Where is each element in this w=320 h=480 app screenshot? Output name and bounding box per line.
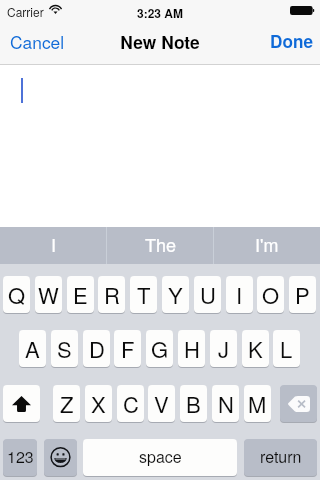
button[interactable]: Done	[268, 20, 315, 65]
staticText: L	[280, 333, 293, 365]
staticText: I	[51, 231, 57, 257]
button[interactable]: E	[67, 276, 94, 313]
button[interactable]: P	[289, 276, 316, 313]
button[interactable]: I'm	[213, 227, 320, 264]
button[interactable]: J	[210, 330, 237, 367]
button[interactable]: B	[180, 385, 207, 422]
staticText: E	[73, 279, 88, 311]
staticText: M	[248, 388, 267, 420]
staticText: O	[262, 279, 280, 311]
staticText: Q	[8, 279, 26, 311]
staticText: N	[218, 388, 234, 420]
button[interactable]: I	[0, 227, 107, 264]
staticText: 3:23 AM	[0, 4, 320, 21]
button[interactable]: The	[107, 227, 214, 264]
button[interactable]: N	[212, 385, 239, 422]
button[interactable]: Emoji	[44, 439, 77, 476]
button[interactable]: D	[83, 330, 110, 367]
staticText: Cancel	[10, 29, 65, 54]
staticText: P	[295, 279, 310, 311]
staticText: I	[236, 279, 243, 311]
staticText: The	[145, 231, 177, 257]
staticText: S	[57, 333, 72, 365]
button[interactable]: I	[226, 276, 253, 313]
button[interactable]: G	[146, 330, 173, 367]
button[interactable]: K	[242, 330, 269, 367]
button[interactable]: M	[244, 385, 271, 422]
button[interactable]: X	[85, 385, 112, 422]
button[interactable]: O	[257, 276, 284, 313]
staticText: A	[25, 333, 40, 365]
button[interactable]: Delete	[280, 385, 317, 422]
button[interactable]: T	[130, 276, 157, 313]
button[interactable]: return	[244, 439, 317, 476]
staticText: New Note	[0, 29, 320, 54]
staticText: space	[139, 445, 182, 468]
button[interactable]: F	[114, 330, 141, 367]
staticText: Z	[60, 388, 74, 420]
button[interactable]: space	[83, 439, 237, 476]
button[interactable]: L	[273, 330, 300, 367]
button[interactable]: U	[194, 276, 221, 313]
staticText: 123	[7, 445, 34, 468]
staticText: return	[260, 445, 302, 468]
staticText: J	[218, 333, 230, 365]
staticText: W	[38, 279, 59, 311]
staticText: G	[151, 333, 169, 365]
button[interactable]: Q	[3, 276, 30, 313]
staticText: D	[89, 333, 105, 365]
staticText: R	[104, 279, 120, 311]
button[interactable]: C	[117, 385, 144, 422]
button[interactable]: S	[51, 330, 78, 367]
button[interactable]: Shift	[3, 385, 40, 422]
staticText: H	[184, 333, 200, 365]
button[interactable]: V	[148, 385, 175, 422]
staticText: I'm	[255, 231, 279, 257]
button[interactable]: W	[35, 276, 62, 313]
button[interactable]: Z	[53, 385, 80, 422]
staticText: V	[154, 388, 169, 420]
staticText: T	[137, 279, 151, 311]
staticText: B	[186, 388, 201, 420]
staticText: Y	[168, 279, 183, 311]
staticText: C	[123, 388, 139, 420]
staticText: U	[200, 279, 216, 311]
staticText: Done	[270, 29, 313, 54]
button[interactable]: 123	[3, 439, 37, 476]
button[interactable]: R	[98, 276, 125, 313]
button[interactable]: Cancel	[8, 20, 67, 65]
button[interactable]: H	[178, 330, 205, 367]
staticText: X	[91, 388, 106, 420]
button[interactable]: Y	[162, 276, 189, 313]
staticText: Carrier	[7, 3, 44, 20]
button[interactable]: A	[19, 330, 46, 367]
staticText: F	[121, 333, 135, 365]
staticText: K	[248, 333, 263, 365]
